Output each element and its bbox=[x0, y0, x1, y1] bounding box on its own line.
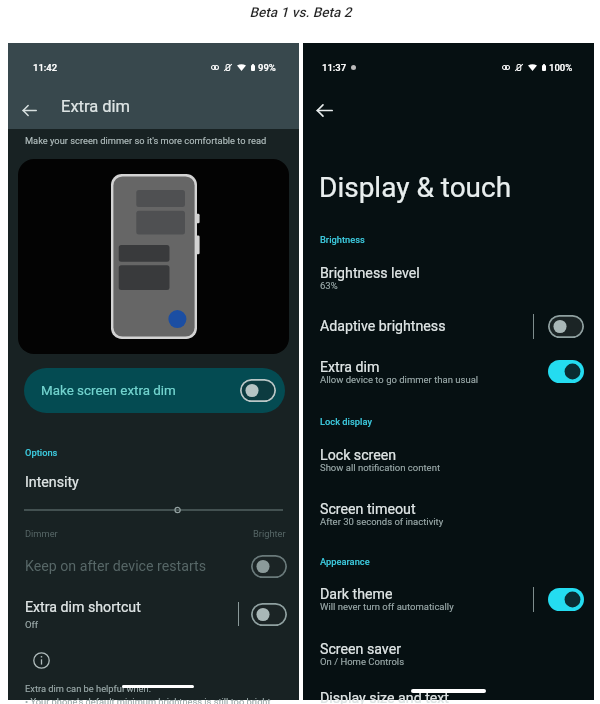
staticText: Lock display bbox=[320, 416, 372, 427]
staticText: Brighter bbox=[253, 528, 286, 539]
button[interactable]: Back bbox=[14, 95, 44, 125]
button[interactable]: Toggle on bbox=[548, 588, 584, 611]
staticText: Extra dim bbox=[320, 359, 380, 376]
staticText: Display & touch bbox=[319, 171, 512, 204]
staticText: Make screen extra dim bbox=[41, 383, 176, 399]
staticText: Dark theme bbox=[320, 586, 393, 603]
staticText: Beta 1 vs. Beta 2 bbox=[249, 4, 352, 20]
staticText: On / Home Controls bbox=[320, 656, 405, 667]
staticText: 11:37 bbox=[322, 62, 347, 73]
staticText: 63% bbox=[320, 280, 338, 291]
button[interactable]: Back bbox=[309, 95, 339, 125]
staticText: Display size and text bbox=[320, 690, 450, 704]
button[interactable]: Toggle off bbox=[251, 555, 287, 578]
button[interactable]: Lock screen bbox=[303, 439, 594, 479]
staticText: Keep on after device restarts bbox=[25, 558, 207, 575]
staticText: Lock screen bbox=[320, 447, 397, 464]
button[interactable]: Toggle off bbox=[251, 603, 287, 626]
staticText: Extra dim can be helpful when: bbox=[25, 683, 151, 694]
button[interactable]: Brightness level bbox=[303, 257, 594, 297]
staticText: Brightness bbox=[320, 234, 365, 245]
button[interactable]: Adaptive brightness bbox=[303, 310, 594, 338]
button[interactable]: Extra dim bbox=[303, 351, 594, 391]
staticText: Allow device to go dimmer than usual bbox=[320, 374, 479, 385]
button[interactable]: Keep on after device restarts bbox=[8, 549, 299, 583]
button[interactable]: Make screen extra dim bbox=[24, 368, 285, 413]
staticText: 11:42 bbox=[33, 62, 58, 73]
button[interactable]: Screen timeout bbox=[303, 493, 594, 533]
staticText: Adaptive brightness bbox=[320, 318, 446, 335]
staticText: After 30 seconds of inactivity bbox=[320, 516, 444, 527]
staticText: Screen timeout bbox=[320, 501, 416, 518]
button[interactable]: Screen saver bbox=[303, 633, 594, 673]
staticText: Brightness level bbox=[320, 265, 420, 282]
staticText: Will never turn off automatically bbox=[320, 601, 454, 612]
staticText: Extra dim shortcut bbox=[25, 599, 141, 616]
button[interactable]: Display size and text bbox=[320, 690, 600, 704]
button[interactable]: Toggle off bbox=[548, 315, 584, 338]
staticText: Extra dim bbox=[61, 97, 131, 116]
staticText: Options bbox=[25, 447, 58, 458]
staticText: Make your screen dimmer so it's more com… bbox=[25, 135, 267, 146]
button[interactable]: Toggle off bbox=[240, 379, 276, 402]
staticText: • Your phone's default minimum brightnes… bbox=[25, 696, 271, 704]
button[interactable]: Dark theme bbox=[303, 578, 594, 618]
staticText: 99% bbox=[258, 62, 276, 73]
button[interactable]: Extra dim shortcut bbox=[8, 594, 299, 634]
staticText: Intensity bbox=[25, 474, 79, 491]
staticText: Dimmer bbox=[25, 528, 58, 539]
staticText: 100% bbox=[549, 62, 573, 73]
button[interactable]: Information bbox=[33, 652, 50, 669]
staticText: Off bbox=[25, 619, 39, 630]
button[interactable]: Toggle on bbox=[548, 360, 584, 383]
staticText: Screen saver bbox=[320, 641, 401, 658]
staticText: Appearance bbox=[320, 556, 370, 567]
staticText: Show all notification content bbox=[320, 462, 440, 473]
